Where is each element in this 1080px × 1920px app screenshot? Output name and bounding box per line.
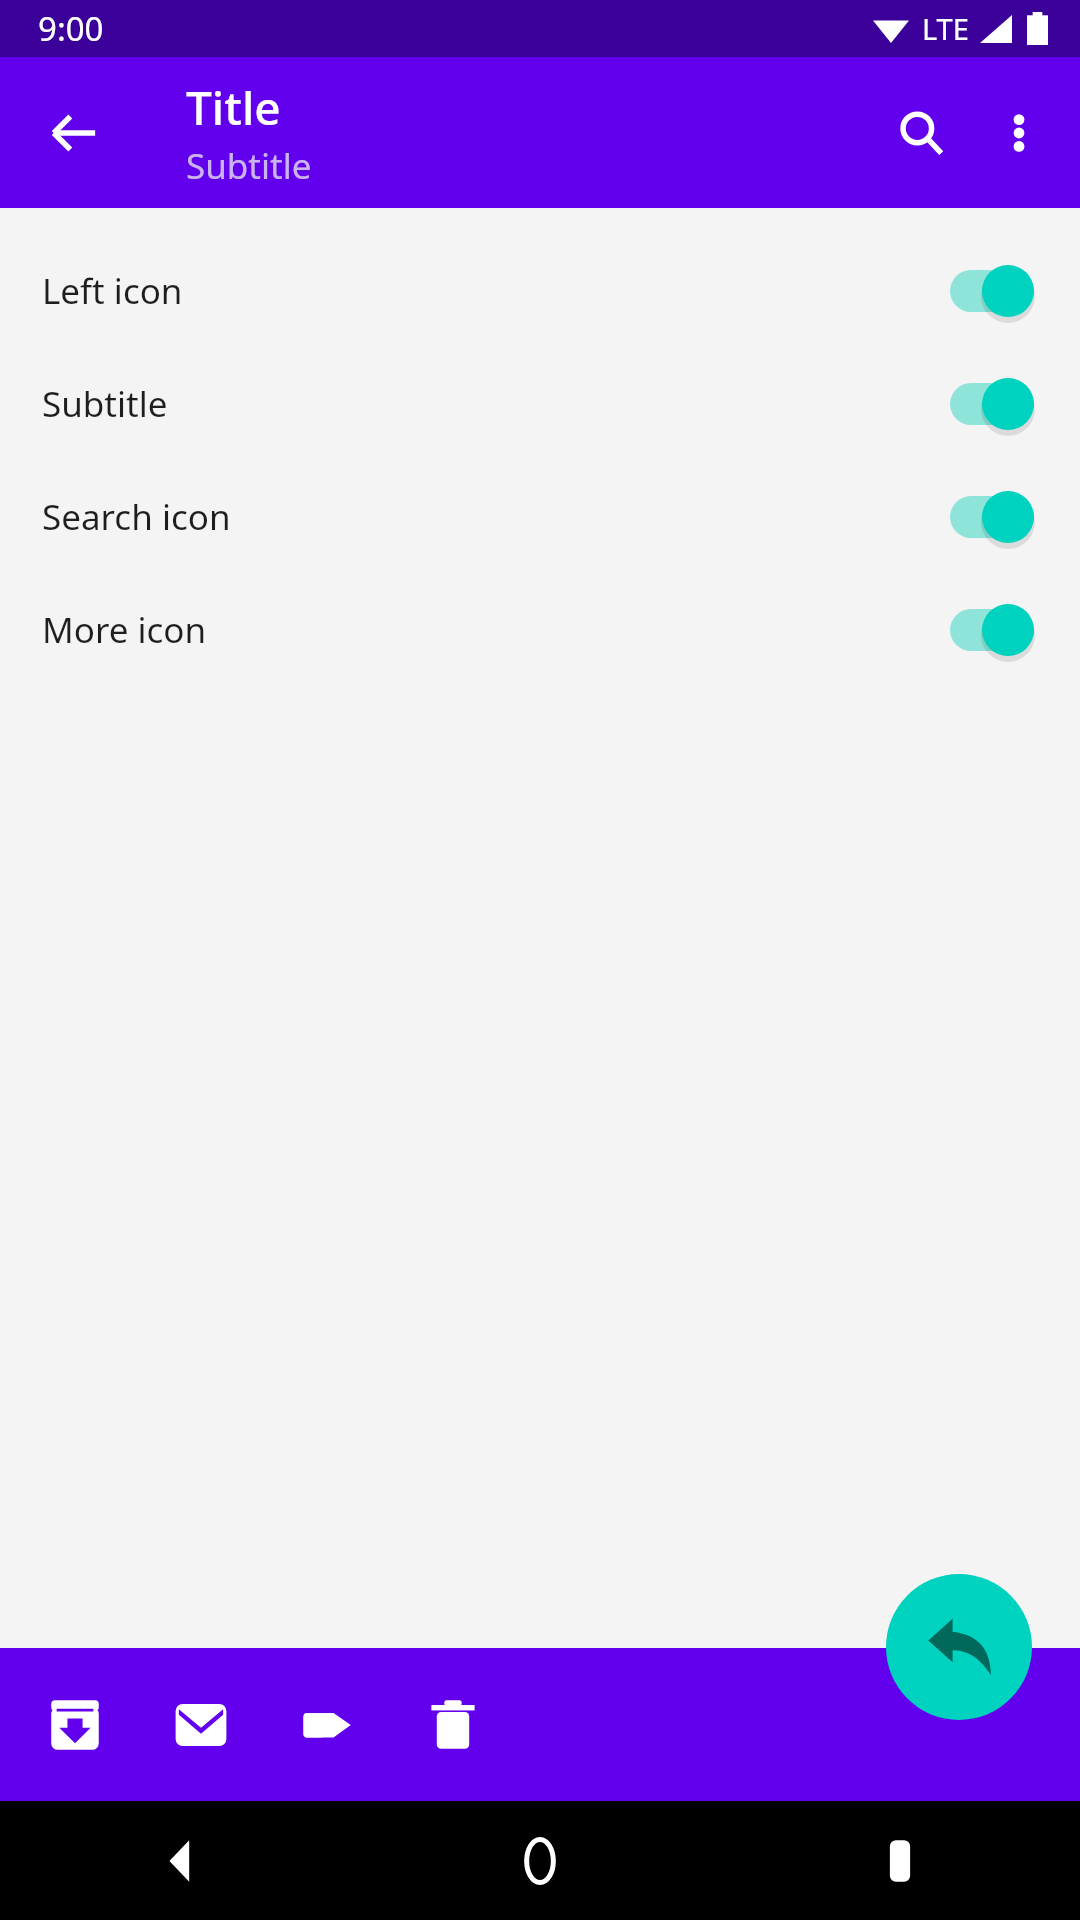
button[interactable]: Subtitle xyxy=(0,347,1080,460)
button[interactable] xyxy=(942,262,1038,320)
button[interactable]: Home xyxy=(360,1801,720,1920)
button[interactable] xyxy=(942,375,1038,433)
button[interactable]: Archive xyxy=(12,1662,138,1788)
button[interactable] xyxy=(942,601,1038,659)
button[interactable]: More options xyxy=(970,84,1068,182)
staticText: 9:00 xyxy=(38,6,104,51)
button[interactable]: Back xyxy=(28,87,120,179)
staticText: Search icon xyxy=(42,493,231,541)
button[interactable]: More icon xyxy=(0,573,1080,686)
button[interactable]: Mark as unread xyxy=(138,1662,264,1788)
staticText: Left icon xyxy=(42,267,183,315)
staticText: More icon xyxy=(42,606,207,654)
button[interactable] xyxy=(942,488,1038,546)
button[interactable]: Recent apps xyxy=(720,1801,1080,1920)
staticText: LTE xyxy=(922,9,969,48)
button[interactable]: Delete xyxy=(390,1662,516,1788)
button[interactable]: Back xyxy=(0,1801,360,1920)
staticText: Subtitle xyxy=(42,380,168,428)
staticText: Subtitle xyxy=(186,142,312,190)
button[interactable]: Search icon xyxy=(0,460,1080,573)
button[interactable]: Label xyxy=(264,1662,390,1788)
button[interactable]: Left icon xyxy=(0,234,1080,347)
button[interactable]: Reply xyxy=(886,1574,1032,1720)
button[interactable]: Search xyxy=(872,84,970,182)
staticText: Title xyxy=(186,76,281,139)
